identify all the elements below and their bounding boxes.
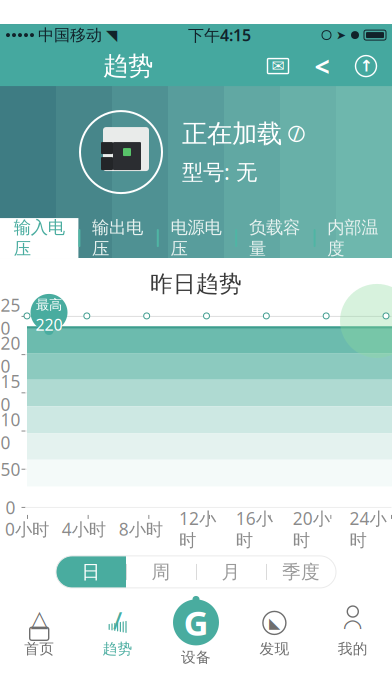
button[interactable]: ◣ xyxy=(235,602,314,666)
staticText: 0 xyxy=(5,496,15,519)
staticText: 250 xyxy=(0,293,20,339)
button[interactable]: 季度 xyxy=(266,556,336,588)
staticText: 电源电压 xyxy=(170,217,221,259)
staticText: ◠ xyxy=(343,614,363,640)
button[interactable]: ◠ xyxy=(314,602,392,666)
button[interactable]: 周 xyxy=(126,556,196,588)
staticText: 负载容量 xyxy=(249,217,300,259)
staticText: 日 xyxy=(81,560,100,583)
staticText: 输出电压 xyxy=(92,217,143,259)
staticText: < xyxy=(314,48,329,84)
staticText: 我的 xyxy=(338,640,368,658)
staticText: ✉ xyxy=(271,57,284,75)
button[interactable]: / xyxy=(78,602,157,666)
staticText: 周 xyxy=(151,560,170,583)
button[interactable]: 电源电压 xyxy=(157,218,235,258)
staticText: 趋势 xyxy=(103,50,153,82)
button[interactable]: 上传 xyxy=(344,46,388,86)
staticText: 季度 xyxy=(282,560,320,583)
staticText: 12小时 xyxy=(179,507,216,551)
staticText: / xyxy=(293,122,300,145)
button[interactable]: 负载容量 xyxy=(235,218,314,258)
staticText: 首页 xyxy=(24,640,54,658)
staticText: 20小时 xyxy=(293,507,330,551)
staticText: 型号: 无 xyxy=(182,157,257,186)
staticText: 下午4:15 xyxy=(188,24,251,46)
staticText: ◣ xyxy=(269,615,280,631)
staticText: 200 xyxy=(0,332,20,378)
staticText: / xyxy=(113,604,122,636)
button[interactable]: 消息 xyxy=(256,46,300,86)
button[interactable]: 日 xyxy=(56,556,126,588)
staticText: 150 xyxy=(0,370,20,416)
staticText: 最高 xyxy=(36,297,62,313)
staticText: 中国移动 xyxy=(38,25,102,45)
staticText: 趋势 xyxy=(103,640,133,658)
staticText: 昨日趋势 xyxy=(150,270,242,298)
staticText: 月 xyxy=(221,560,240,583)
staticText: 24小时 xyxy=(349,507,386,551)
staticText: ↑ xyxy=(359,57,372,75)
staticText: 8小时 xyxy=(119,517,163,540)
staticText: 内部温度 xyxy=(327,217,378,259)
button[interactable]: G xyxy=(157,597,235,671)
button[interactable]: 内部温度 xyxy=(314,218,392,258)
staticText: ➤ xyxy=(336,28,346,42)
staticText: G xyxy=(183,599,208,645)
staticText: 输入电压 xyxy=(14,217,65,259)
button[interactable]: 月 xyxy=(196,556,266,588)
button[interactable]: 分享 xyxy=(300,46,344,86)
staticText: 220 xyxy=(35,314,62,335)
button[interactable]: △ xyxy=(0,602,78,666)
staticText: 0小时 xyxy=(5,517,49,540)
button[interactable]: 输出电压 xyxy=(78,218,157,258)
button[interactable]: 输入电压 xyxy=(0,218,78,258)
staticText: 设备 xyxy=(181,648,211,666)
staticText: 正在加载 xyxy=(182,118,282,149)
staticText: 4小时 xyxy=(62,517,106,540)
staticText: △ xyxy=(31,605,48,631)
staticText: 100 xyxy=(0,408,20,454)
staticText: 50 xyxy=(0,458,20,481)
staticText: ◥ xyxy=(106,27,117,43)
staticText: 发现 xyxy=(259,640,289,658)
staticText: 16小时 xyxy=(236,507,273,551)
